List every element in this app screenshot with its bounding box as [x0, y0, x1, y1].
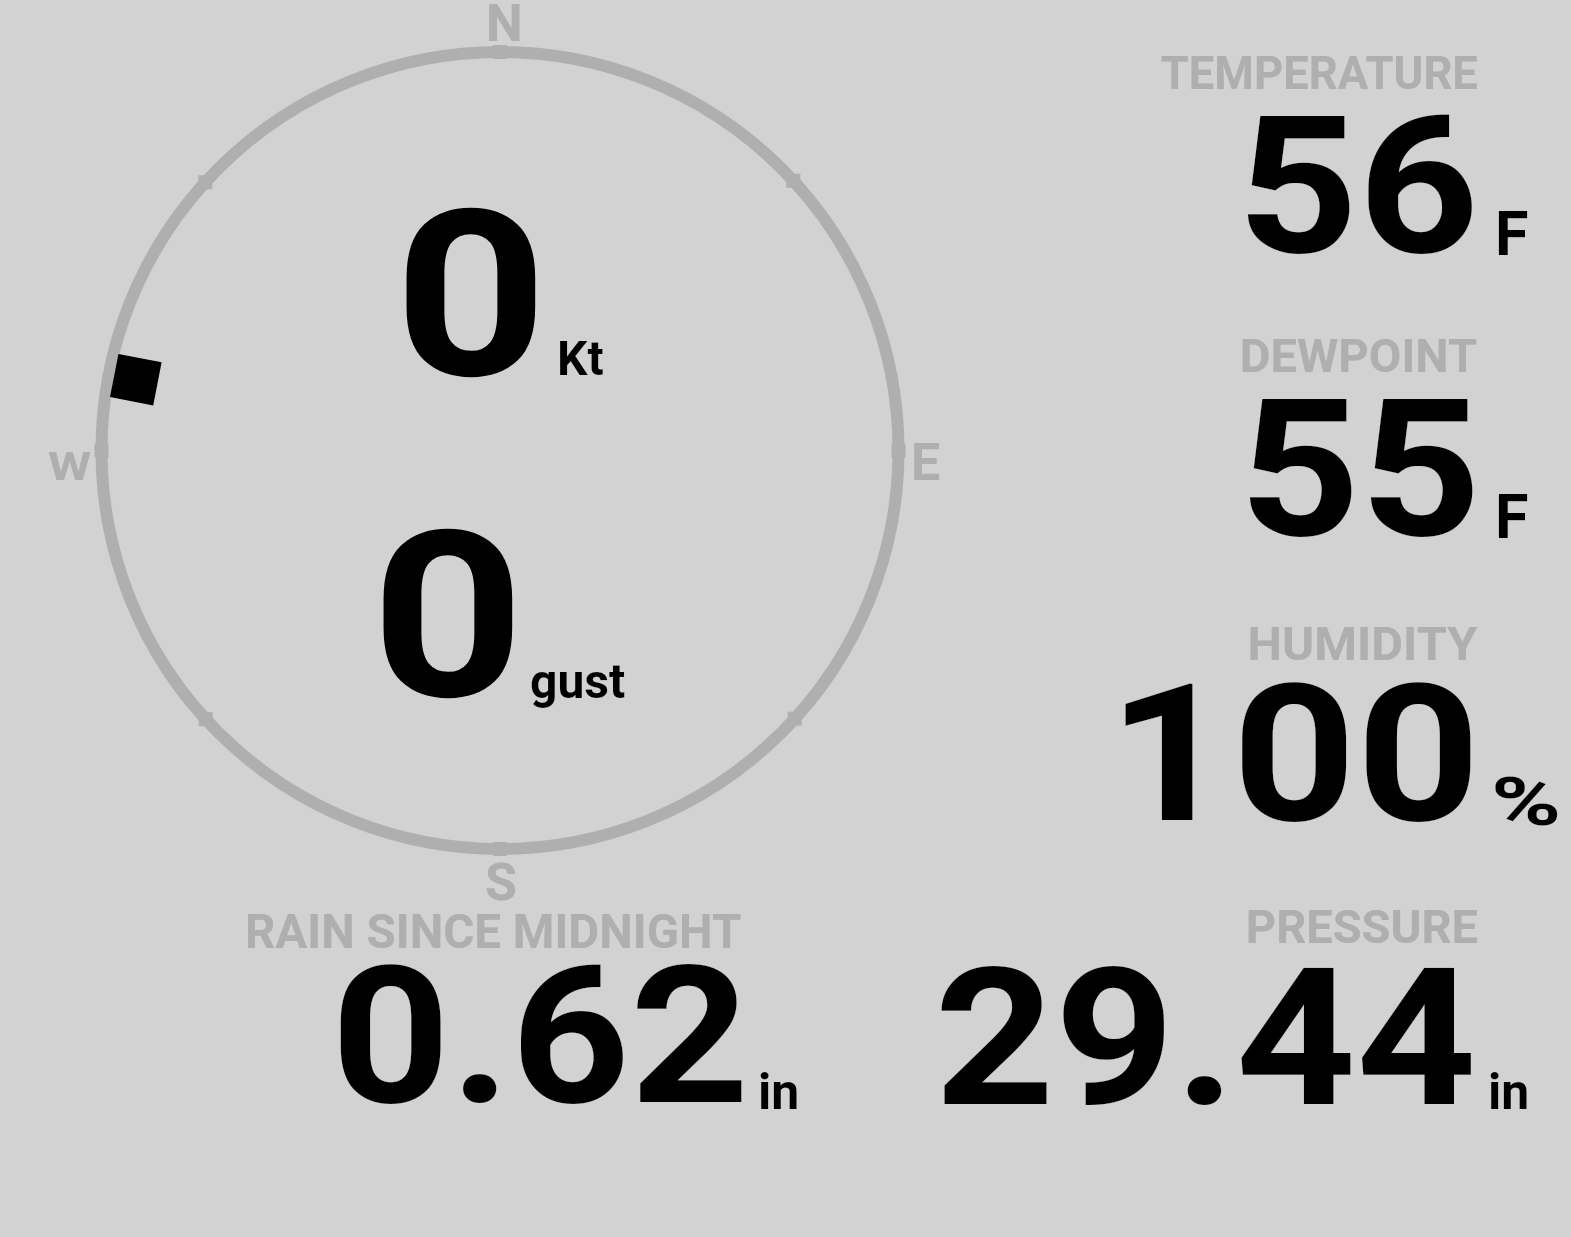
staticText: % — [1491, 764, 1562, 841]
staticText: E — [911, 432, 941, 493]
staticText: PRESSURE — [1246, 900, 1478, 954]
staticText: 0 — [371, 481, 526, 753]
staticText: 29.44 — [934, 926, 1477, 1151]
staticText: 100 — [1108, 642, 1481, 867]
staticText: in — [758, 1063, 800, 1122]
staticText: F — [1495, 481, 1529, 552]
button[interactable]: Wind speed and direction — [90, 40, 910, 860]
staticText: 56 — [1237, 74, 1480, 299]
staticText: N — [486, 0, 523, 54]
staticText: 0 — [394, 160, 549, 432]
staticText: S — [485, 852, 517, 913]
staticText: DEWPOINT — [1240, 329, 1478, 383]
staticText: RAIN SINCE MIDNIGHT — [245, 904, 742, 960]
button[interactable]: Dewpoint 55 degrees F — [1100, 325, 1571, 595]
staticText: HUMIDITY — [1247, 617, 1478, 671]
staticText: 55 — [1239, 357, 1482, 582]
staticText: F — [1495, 198, 1529, 269]
button[interactable]: Temperature 56 degrees F — [1100, 40, 1571, 310]
staticText: in — [1488, 1063, 1530, 1122]
staticText: gust — [530, 653, 626, 709]
button[interactable]: Humidity 100 percent — [1100, 610, 1571, 880]
staticText: W — [48, 445, 92, 490]
button[interactable]: Pressure 29.44 inches — [1100, 895, 1571, 1135]
staticText: 0.62 — [331, 924, 750, 1149]
staticText: Kt — [557, 330, 604, 386]
staticText: TEMPERATURE — [1161, 46, 1478, 100]
button[interactable]: Rain since midnight 0.62 inches — [200, 895, 820, 1135]
